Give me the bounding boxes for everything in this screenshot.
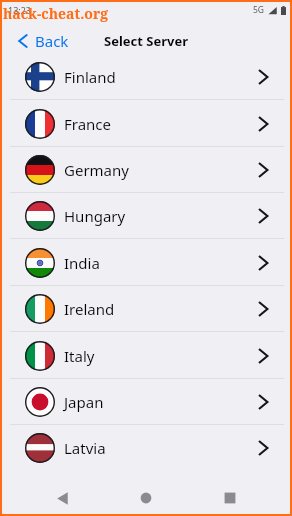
staticText: hack-cheat.org <box>3 4 109 23</box>
staticText: Finland <box>64 67 116 87</box>
staticText: Japan <box>64 392 104 412</box>
button[interactable]: Back <box>48 484 76 512</box>
button[interactable]: Finland <box>2 54 290 100</box>
staticText: Ireland <box>64 299 115 319</box>
button[interactable]: Recent apps <box>216 484 244 512</box>
staticText: Italy <box>64 346 95 366</box>
button[interactable]: Hungary <box>2 193 290 239</box>
button[interactable]: Latvia <box>2 425 290 471</box>
button[interactable]: Japan <box>2 379 290 425</box>
staticText: 13:23 <box>8 4 32 16</box>
button[interactable]: Ireland <box>2 286 290 332</box>
staticText: Germany <box>64 160 129 180</box>
staticText: Back <box>35 31 69 51</box>
staticText: Hungary <box>64 206 126 226</box>
staticText: France <box>64 114 112 134</box>
staticText: 5G <box>253 4 265 16</box>
button[interactable]: Home <box>132 484 160 512</box>
staticText: Select Server <box>104 32 189 50</box>
button[interactable]: Italy <box>2 333 290 379</box>
button[interactable]: Back <box>18 31 69 51</box>
staticText: Latvia <box>64 438 106 458</box>
button[interactable]: France <box>2 101 290 147</box>
staticText: India <box>64 253 100 273</box>
button[interactable]: Germany <box>2 147 290 193</box>
button[interactable]: India <box>2 240 290 286</box>
